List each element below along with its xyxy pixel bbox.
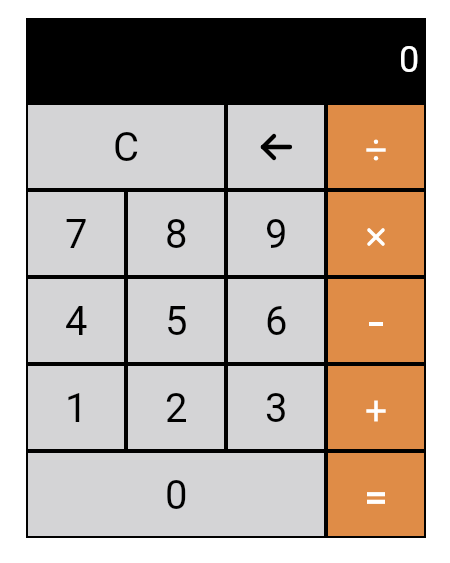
button[interactable] bbox=[326, 103, 426, 190]
button[interactable]: 9 bbox=[226, 190, 326, 277]
button[interactable] bbox=[326, 451, 426, 538]
staticText: 3 bbox=[265, 385, 288, 432]
staticText: 8 bbox=[165, 211, 188, 258]
staticText: 5 bbox=[165, 298, 188, 345]
staticText: 6 bbox=[265, 298, 288, 345]
staticText: 4 bbox=[65, 298, 88, 345]
button[interactable]: 0 bbox=[26, 451, 326, 538]
button[interactable]: 7 bbox=[26, 190, 126, 277]
button[interactable]: 4 bbox=[26, 277, 126, 364]
button[interactable] bbox=[326, 277, 426, 364]
button[interactable] bbox=[326, 364, 426, 451]
button[interactable]: 1 bbox=[26, 364, 126, 451]
button[interactable]: 3 bbox=[226, 364, 326, 451]
staticText: 1 bbox=[65, 385, 88, 432]
staticText: 2 bbox=[165, 385, 188, 432]
button[interactable] bbox=[226, 103, 326, 190]
staticText: C bbox=[113, 124, 140, 171]
button[interactable] bbox=[326, 190, 426, 277]
button[interactable]: 5 bbox=[126, 277, 226, 364]
staticText: 9 bbox=[265, 211, 288, 258]
button[interactable]: 8 bbox=[126, 190, 226, 277]
button[interactable]: 6 bbox=[226, 277, 326, 364]
button[interactable]: 2 bbox=[126, 364, 226, 451]
staticText: 7 bbox=[65, 211, 88, 258]
staticText: 0 bbox=[399, 39, 420, 81]
button[interactable]: C bbox=[26, 103, 226, 190]
staticText: 0 bbox=[165, 472, 188, 519]
